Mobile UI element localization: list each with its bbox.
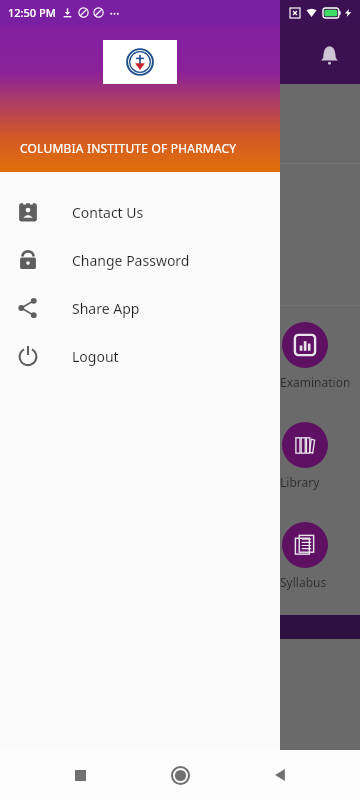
staticText: 12:50 PM [8, 5, 56, 20]
staticText: Change Password [72, 251, 190, 270]
staticText: Logout [72, 347, 119, 366]
button[interactable]: Back [260, 755, 300, 795]
staticText: Contact Us [72, 203, 144, 222]
button[interactable]: Share App [0, 284, 280, 332]
button[interactable]: Library [0, 410, 360, 502]
button[interactable]: Syllabus [0, 510, 360, 602]
button[interactable]: Notifications [312, 38, 346, 72]
button[interactable]: Recent apps [60, 755, 100, 795]
staticText: Syllabus [280, 574, 327, 590]
button[interactable]: Home [160, 755, 200, 795]
button[interactable]: Logout [0, 332, 280, 380]
staticText: Examination [280, 374, 351, 390]
staticText: COLUMBIA INSTITUTE OF PHARMACY [20, 140, 237, 156]
staticText: COLUMBIA INSTITUTE O... [14, 45, 200, 65]
staticText: Share App [72, 299, 140, 318]
button[interactable]: Change Password [0, 236, 280, 284]
staticText: Library [280, 474, 320, 490]
button[interactable]: Examination [0, 310, 360, 402]
button[interactable]: Contact Us [0, 188, 280, 236]
